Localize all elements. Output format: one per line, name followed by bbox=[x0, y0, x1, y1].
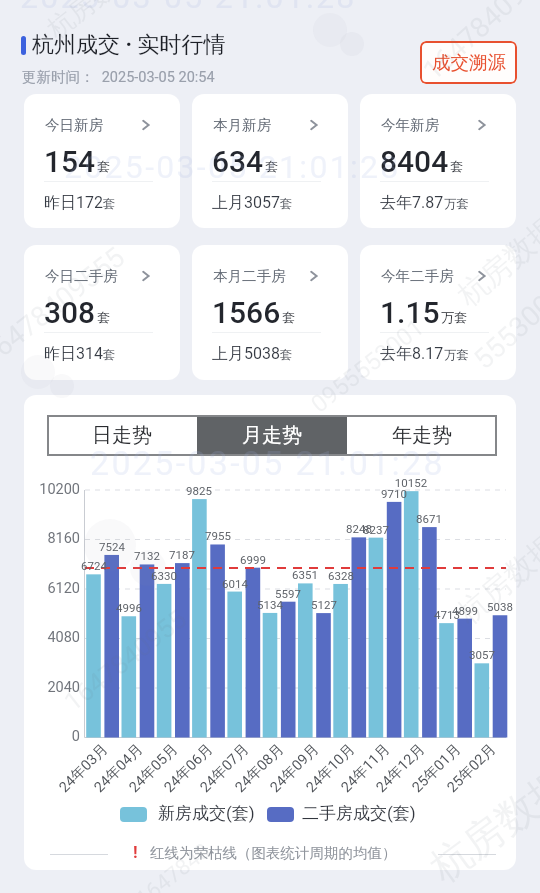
staticText: 6120 bbox=[20, 580, 80, 597]
staticText: 6330 bbox=[142, 569, 186, 582]
button[interactable]: 本月二手房 bbox=[192, 245, 348, 380]
staticText: 杭州成交 · 实时行情 bbox=[32, 31, 226, 59]
staticText: 3057 bbox=[460, 648, 504, 661]
staticText: 2040 bbox=[20, 679, 80, 696]
staticText: 万套 bbox=[444, 196, 469, 212]
button[interactable]: 本月新房 bbox=[192, 94, 348, 228]
staticText: 上月5038 bbox=[212, 344, 280, 364]
staticText: 月走势 bbox=[242, 423, 302, 448]
staticText: 8671 bbox=[407, 512, 451, 525]
staticText: 308 bbox=[44, 295, 96, 330]
staticText: 新房成交(套) bbox=[158, 803, 255, 824]
staticText: 今日新房 bbox=[45, 116, 103, 134]
staticText: 今日二手房 bbox=[45, 267, 118, 285]
staticText: 本月二手房 bbox=[213, 267, 286, 285]
staticText: 10152 bbox=[389, 476, 433, 489]
staticText: 套 bbox=[280, 347, 293, 363]
button[interactable]: 成交溯源 bbox=[420, 41, 517, 84]
staticText: 5127 bbox=[302, 598, 346, 611]
button[interactable]: 年走势 bbox=[347, 415, 497, 456]
staticText: 154 bbox=[44, 144, 96, 179]
staticText: 今年新房 bbox=[381, 116, 439, 134]
staticText: 今年二手房 bbox=[381, 267, 454, 285]
staticText: 套 bbox=[103, 196, 116, 212]
staticText: 25年01月 bbox=[408, 740, 465, 796]
staticText: 4899 bbox=[443, 604, 487, 617]
staticText: 昨日172 bbox=[44, 193, 103, 213]
staticText: 套 bbox=[265, 158, 278, 174]
staticText: 6351 bbox=[283, 568, 327, 581]
staticText: 8160 bbox=[20, 530, 80, 547]
staticText: 2025-03-05 21:01:28 bbox=[64, 148, 401, 186]
staticText: 10200 bbox=[20, 481, 80, 498]
staticText: 1566 bbox=[212, 295, 281, 330]
staticText: 24年06月 bbox=[160, 740, 217, 796]
button[interactable]: 今年二手房 bbox=[360, 245, 516, 380]
staticText: 0955553001 bbox=[306, 313, 429, 419]
staticText: 7524 bbox=[90, 540, 134, 553]
staticText: 套 bbox=[280, 196, 293, 212]
staticText: 日走势 bbox=[92, 423, 152, 448]
staticText: 7955 bbox=[196, 529, 240, 542]
staticText: 24年03月 bbox=[55, 740, 112, 796]
button[interactable]: 日走势 bbox=[47, 415, 197, 456]
staticText: 5038 bbox=[478, 600, 522, 613]
staticText: 去年8.17 bbox=[380, 344, 444, 364]
staticText: 套 bbox=[450, 158, 463, 174]
staticText: 6724 bbox=[72, 559, 116, 572]
staticText: 4713 bbox=[425, 608, 469, 621]
staticText: 年走势 bbox=[392, 423, 452, 448]
staticText: 杭房数据 bbox=[450, 526, 540, 632]
button[interactable]: 今年新房 bbox=[360, 94, 516, 228]
staticText: 杭房数据 bbox=[421, 758, 540, 892]
staticText: 24年04月 bbox=[90, 740, 147, 796]
staticText: 24年10月 bbox=[302, 740, 359, 796]
button[interactable]: 今日新房 bbox=[24, 94, 180, 228]
staticText: 4996 bbox=[107, 601, 151, 614]
staticText: 6999 bbox=[231, 553, 275, 566]
staticText: 7132 bbox=[125, 549, 169, 562]
staticText: 1647840 bbox=[131, 838, 216, 893]
staticText: 万套 bbox=[444, 347, 469, 363]
staticText: 更新时间： 2025-03-05 20:54 bbox=[22, 68, 215, 86]
staticText: 25年02月 bbox=[443, 740, 500, 796]
staticText: 634 bbox=[212, 144, 264, 179]
staticText: 万套 bbox=[441, 309, 467, 325]
staticText: 16478409555 bbox=[416, 0, 540, 87]
staticText: 24年05月 bbox=[125, 740, 182, 796]
staticText: 24年08月 bbox=[231, 740, 288, 796]
staticText: 套 bbox=[282, 309, 295, 325]
staticText: 杭房数据 bbox=[41, 0, 143, 45]
staticText: 24年12月 bbox=[372, 740, 429, 796]
staticText: 1647840955 bbox=[58, 603, 193, 717]
staticText: 去年7.87 bbox=[380, 193, 444, 213]
button[interactable]: 今日二手房 bbox=[24, 245, 180, 380]
staticText: 本月新房 bbox=[213, 116, 271, 134]
staticText: 9825 bbox=[177, 484, 221, 497]
staticText: 红线为荣枯线（图表统计周期的均值） bbox=[150, 844, 397, 862]
staticText: 套 bbox=[97, 158, 110, 174]
staticText: 8248 bbox=[337, 522, 381, 535]
staticText: ! bbox=[133, 842, 138, 862]
staticText: 套 bbox=[103, 347, 116, 363]
staticText: 6014 bbox=[213, 577, 257, 590]
staticText: 24年07月 bbox=[196, 740, 253, 796]
staticText: 上月3057 bbox=[212, 193, 280, 213]
staticText: 5597 bbox=[266, 587, 310, 600]
staticText: 2025-03-05 21:01:28 bbox=[20, 0, 357, 16]
staticText: 8404 bbox=[380, 144, 449, 179]
staticText: 昨日314 bbox=[44, 344, 103, 364]
staticText: 0 bbox=[20, 728, 80, 745]
staticText: 55530011 bbox=[467, 267, 540, 376]
staticText: 5134 bbox=[248, 598, 292, 611]
button[interactable]: 月走势 bbox=[197, 415, 347, 456]
staticText: 16478409555 bbox=[0, 240, 132, 373]
staticText: 4080 bbox=[20, 629, 80, 646]
staticText: 24年11月 bbox=[337, 740, 394, 796]
staticText: 2025-03-05 21:01:28 bbox=[90, 443, 445, 483]
staticText: 二手房成交(套) bbox=[302, 803, 416, 824]
staticText: 成交溯源 bbox=[432, 51, 506, 74]
staticText: 7187 bbox=[160, 548, 204, 561]
staticText: 杭房数据 bbox=[450, 208, 540, 314]
staticText: 8237 bbox=[354, 523, 398, 536]
